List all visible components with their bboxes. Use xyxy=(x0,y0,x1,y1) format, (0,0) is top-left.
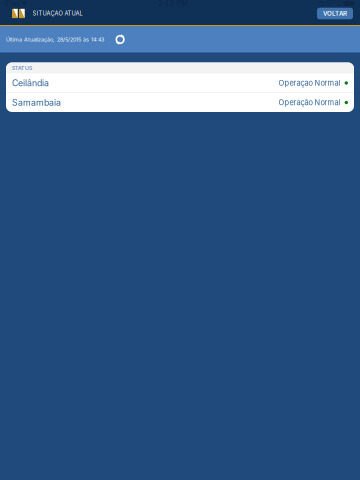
staticText: iPad xyxy=(4,0,19,8)
staticText: Samambaia xyxy=(12,97,61,108)
staticText: Última Atualização, 28/5/2015 às 14:43 xyxy=(6,36,104,43)
button[interactable]: Ceilândia xyxy=(6,73,354,92)
staticText: 2:43 PM xyxy=(158,0,188,8)
staticText: SITUAÇÃO ATUAL xyxy=(33,10,83,17)
staticText: Operação Normal xyxy=(279,98,341,107)
button[interactable]: Atualizar xyxy=(104,35,130,44)
staticText: Operação Normal xyxy=(279,78,341,87)
button[interactable]: Samambaia xyxy=(6,93,354,112)
button[interactable]: VOLTAR xyxy=(317,8,353,19)
staticText: 97% xyxy=(326,0,341,8)
staticText: VOLTAR xyxy=(323,10,347,17)
staticText: STATUS xyxy=(12,65,32,71)
staticText: Ceilândia xyxy=(12,78,49,88)
